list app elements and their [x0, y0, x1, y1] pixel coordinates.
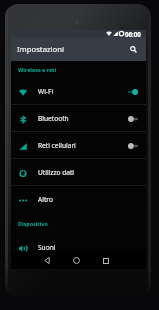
button[interactable]: Indietro — [35, 252, 58, 269]
button[interactable]: Suoni — [11, 234, 146, 261]
staticText: Impostazioni — [17, 44, 64, 54]
button[interactable]: Cerca — [124, 40, 142, 58]
button[interactable]: Bluetooth — [11, 105, 146, 132]
button[interactable]: Home — [65, 252, 88, 269]
button[interactable]: Attiva — [128, 115, 138, 123]
button[interactable]: Reti cellulari — [11, 132, 146, 159]
button[interactable]: Utilizzo dati — [11, 159, 146, 186]
button[interactable]: Attiva — [128, 142, 138, 150]
staticText: Wi-Fi — [38, 87, 54, 96]
button[interactable]: Altro — [11, 186, 146, 213]
staticText: Suoni — [38, 243, 56, 252]
staticText: Altro — [38, 195, 53, 204]
staticText: Dispositivo — [18, 220, 48, 227]
button[interactable]: App recenti — [94, 252, 117, 269]
staticText: Reti cellulari — [38, 141, 76, 150]
staticText: Utilizzo dati — [38, 168, 75, 177]
staticText: Wireless e reti — [18, 66, 57, 73]
staticText: Bluetooth — [38, 114, 69, 123]
staticText: 06:00 — [125, 30, 141, 37]
button[interactable]: Wi-Fi — [11, 78, 146, 105]
button[interactable]: Disattiva — [128, 88, 138, 96]
